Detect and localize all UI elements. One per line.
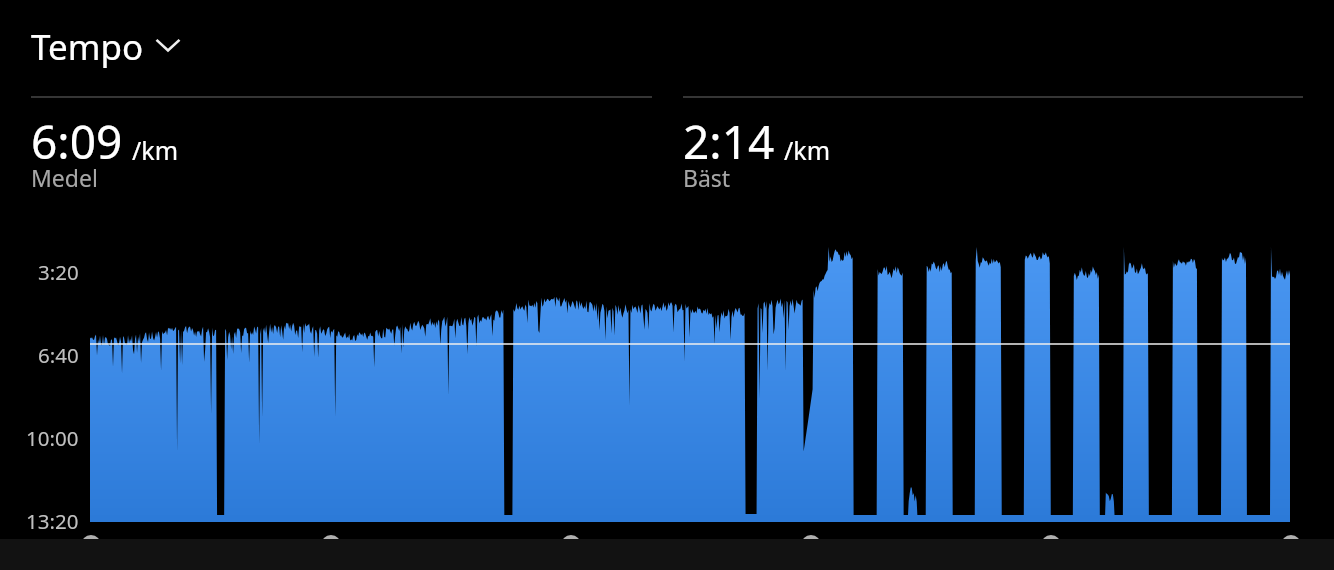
button[interactable] (676, 100, 1276, 186)
button[interactable] (24, 100, 624, 186)
button[interactable]: Tempo – byt mätvärde (24, 16, 194, 72)
